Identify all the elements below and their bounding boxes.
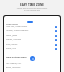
staticText: Tokyo, Japan [6,34,18,37]
staticText: Time Zone [6,22,18,25]
staticText: London, United Kingdom [6,29,29,32]
button[interactable]: Add city [27,21,33,23]
button[interactable]: Add time zone [30,56,35,61]
button[interactable]: Time Zone [4,21,60,26]
staticText: Los Angeles, USA [6,62,22,65]
staticText: in one simple app [0,9,64,12]
button[interactable]: Tokyo, Japan [4,33,60,38]
staticText: Berlin, Germany [6,66,21,69]
button[interactable]: Sydney, Australia [4,37,60,42]
button[interactable]: Berlin, Germany [4,65,60,70]
button[interactable]: Dubai, UAE [4,46,60,51]
staticText: New York, United States [6,25,28,28]
button[interactable]: New York, United States [4,24,60,29]
staticText: Paris, France [6,43,18,46]
staticText: Time in other zones [6,56,27,59]
staticText: Sydney, Australia [6,38,22,41]
button[interactable]: London, United Kingdom [4,28,60,33]
button[interactable]: Paris, France [4,42,60,47]
staticText: EASY TIME ZONE [0,3,64,7]
staticText: Dubai, UAE [6,47,16,50]
staticText: Check time across the world easily [0,7,64,10]
button[interactable]: Los Angeles, USA [4,61,60,66]
